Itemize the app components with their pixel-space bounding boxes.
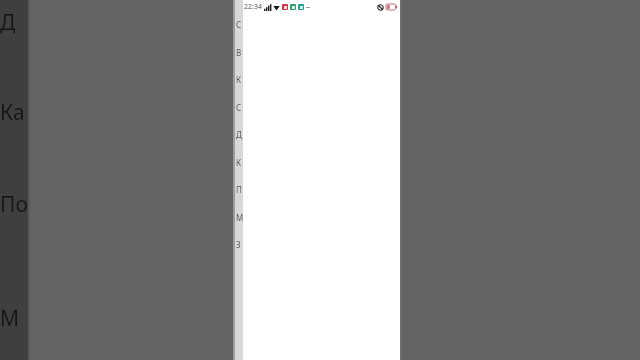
button[interactable]: За	[236, 235, 244, 253]
staticText: Ди	[0, 8, 28, 37]
staticText: Ко	[236, 74, 244, 85]
staticText: Вы	[236, 47, 244, 58]
other: Silent mode	[377, 4, 384, 11]
button[interactable]: По	[0, 182, 28, 226]
staticText: Ди	[236, 129, 244, 140]
button[interactable]: Ми	[236, 208, 244, 226]
staticText: По	[236, 184, 244, 195]
button[interactable]: Вы	[236, 43, 244, 61]
staticText: 22:34	[244, 2, 262, 12]
button[interactable]: Ди	[236, 125, 244, 143]
staticText: Ка	[0, 98, 25, 127]
button[interactable]: Ка	[0, 90, 28, 134]
other: Battery low	[386, 4, 397, 10]
button[interactable]: Со	[236, 98, 244, 116]
staticText: За	[236, 239, 244, 250]
button[interactable]: См	[236, 15, 244, 33]
button[interactable]: Ка	[236, 153, 244, 171]
staticText: Ми	[236, 212, 244, 223]
button[interactable]: Ко	[236, 70, 244, 88]
staticText: По	[0, 190, 28, 219]
button[interactable]: Ма	[0, 296, 28, 340]
staticText: Ма	[0, 304, 28, 333]
staticText: Со	[236, 102, 244, 113]
button[interactable]: Ди	[0, 0, 28, 44]
button[interactable]: По	[236, 180, 244, 198]
staticText: См	[236, 19, 244, 30]
staticText: Ка	[236, 157, 244, 168]
